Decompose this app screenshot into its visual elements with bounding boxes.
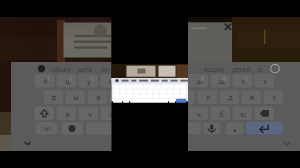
staticText: 1 bbox=[47, 76, 50, 82]
staticText: е bbox=[131, 76, 135, 86]
staticText: 5 bbox=[135, 76, 138, 82]
staticText: 8 bbox=[201, 76, 204, 82]
staticText: ро bbox=[101, 65, 109, 73]
staticText: з bbox=[241, 76, 245, 86]
staticText: р bbox=[162, 92, 167, 102]
staticText: ч bbox=[87, 109, 92, 119]
staticText: а bbox=[118, 92, 122, 102]
button[interactable]: Emoji bbox=[61, 122, 83, 135]
staticText: щ bbox=[218, 76, 225, 86]
button[interactable]: Back bbox=[279, 136, 295, 150]
staticText: х bbox=[263, 76, 267, 86]
staticText: г bbox=[175, 76, 179, 86]
staticText: 9 bbox=[223, 76, 226, 82]
staticText: л bbox=[206, 92, 211, 102]
staticText: 6 bbox=[157, 76, 160, 82]
staticText: у bbox=[87, 76, 91, 86]
staticText: ж bbox=[249, 92, 255, 102]
staticText: детей bbox=[232, 65, 251, 73]
staticText: в bbox=[96, 92, 101, 102]
staticText: о bbox=[184, 92, 189, 102]
staticText: 0 bbox=[245, 76, 248, 82]
staticText: н bbox=[153, 76, 158, 86]
staticText: 3 bbox=[91, 76, 94, 82]
staticText: е: bbox=[258, 65, 264, 73]
button[interactable]: Close bbox=[222, 21, 235, 34]
button[interactable]: Enter bbox=[245, 121, 282, 135]
staticText: с bbox=[109, 109, 113, 119]
staticText: д bbox=[228, 92, 233, 102]
staticText: б bbox=[219, 109, 224, 119]
button[interactable]: Voice input bbox=[203, 122, 221, 135]
button[interactable]: Shift bbox=[34, 106, 54, 120]
staticText: ы bbox=[73, 92, 79, 102]
staticText: я bbox=[65, 109, 70, 119]
staticText: ю bbox=[240, 109, 246, 119]
staticText: кота bbox=[78, 65, 92, 73]
staticText: собаку bbox=[49, 65, 71, 73]
staticText: п bbox=[140, 92, 145, 102]
staticText: ф bbox=[51, 92, 57, 102]
staticText: э bbox=[272, 92, 276, 102]
staticText: й bbox=[43, 76, 48, 86]
staticText: ц bbox=[65, 76, 70, 86]
staticText: ?#1 bbox=[43, 125, 52, 132]
staticText: ь bbox=[197, 109, 201, 119]
staticText: 2 bbox=[69, 76, 72, 82]
button[interactable]: Backspace bbox=[254, 106, 274, 120]
button[interactable]: Hide keyboard bbox=[20, 136, 36, 150]
staticText: кошку bbox=[204, 65, 225, 73]
staticText: 4 bbox=[113, 76, 116, 82]
staticText: 7 bbox=[179, 76, 182, 82]
staticText: ш bbox=[196, 76, 203, 86]
staticText: к bbox=[109, 76, 113, 86]
